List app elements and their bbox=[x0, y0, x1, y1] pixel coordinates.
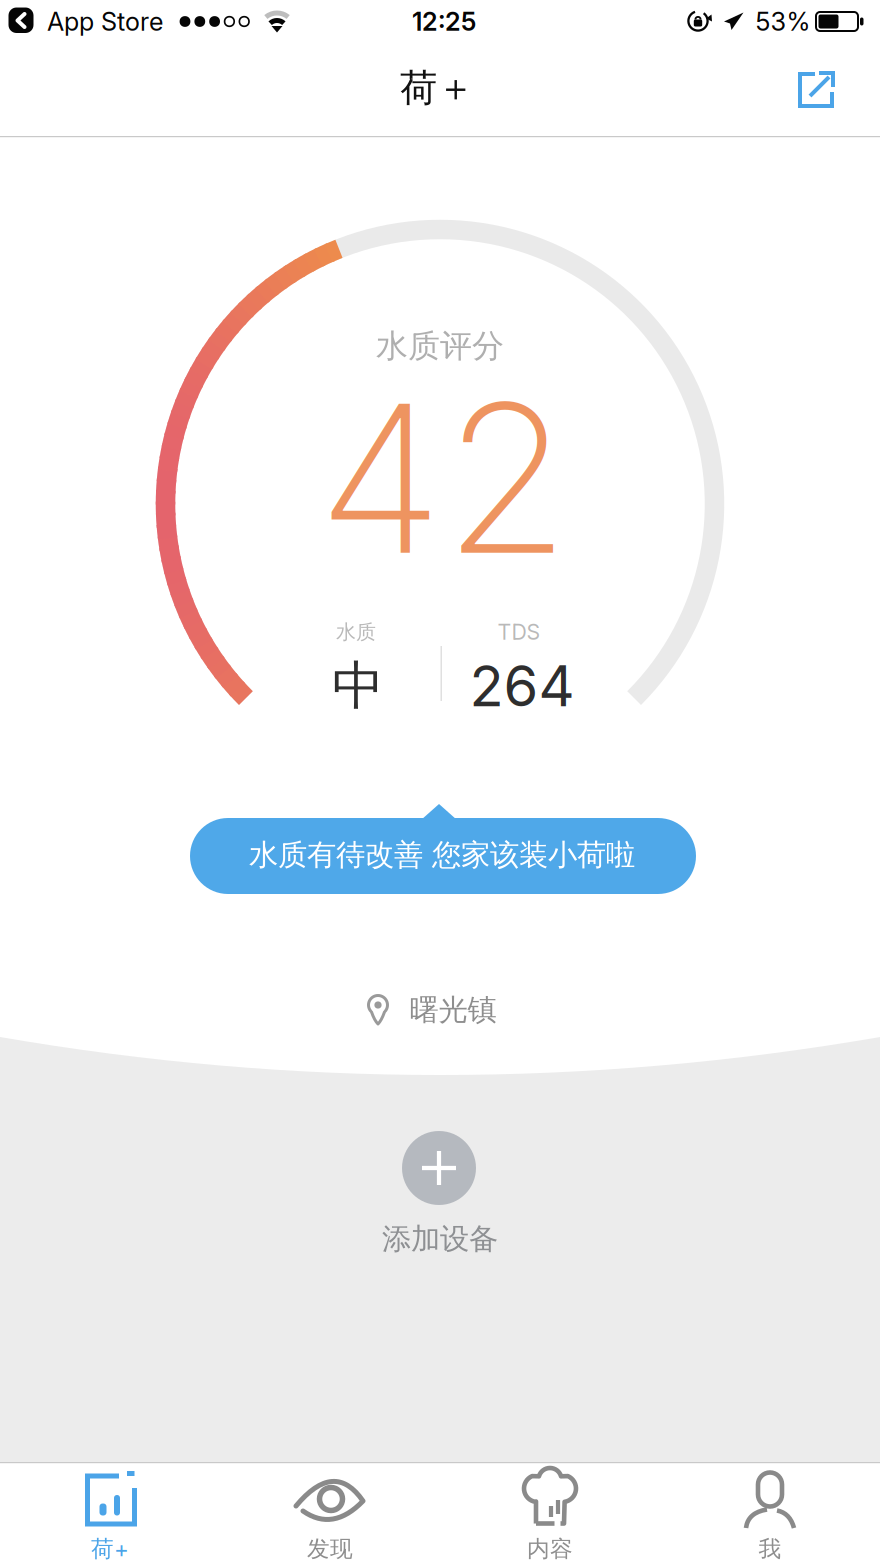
button[interactable]: 我 bbox=[660, 1462, 880, 1565]
staticText: 我 bbox=[758, 1535, 781, 1563]
staticText: 中 bbox=[332, 654, 384, 718]
staticText: 264 bbox=[469, 653, 574, 719]
staticText: 荷＋ bbox=[400, 65, 474, 111]
staticText: 水质有待改善 您家该装小荷啦 bbox=[249, 837, 635, 873]
staticText: 内容 bbox=[527, 1535, 573, 1563]
staticText: 42 bbox=[317, 357, 570, 599]
staticText: TDS bbox=[497, 619, 540, 645]
button[interactable]: 发现 bbox=[220, 1462, 440, 1565]
staticText: 53% bbox=[755, 7, 810, 36]
button[interactable]: Share bbox=[788, 62, 844, 118]
staticText: 水质 bbox=[336, 620, 376, 644]
button[interactable]: 内容 bbox=[440, 1462, 660, 1565]
staticText: 12:25 bbox=[412, 7, 476, 36]
staticText: 添加设备 bbox=[382, 1221, 498, 1257]
button[interactable]: 添加设备 bbox=[355, 1124, 525, 1259]
staticText: 曙光镇 bbox=[409, 992, 496, 1028]
staticText: 荷+ bbox=[91, 1535, 129, 1563]
staticText: 发现 bbox=[307, 1535, 353, 1563]
staticText: App Store bbox=[47, 7, 163, 36]
staticText: 水质评分 bbox=[376, 326, 504, 366]
button[interactable]: 水质有待改善 您家该装小荷啦 bbox=[190, 803, 696, 895]
button[interactable]: 荷+ bbox=[0, 1462, 220, 1565]
